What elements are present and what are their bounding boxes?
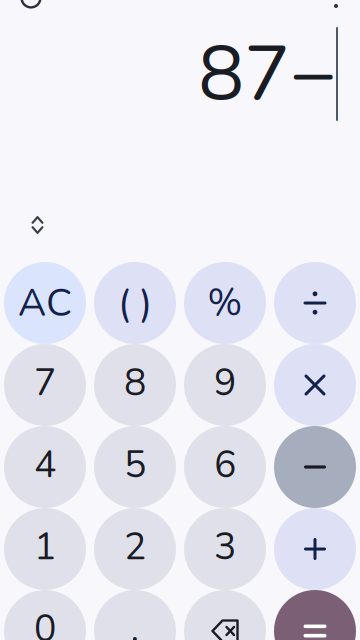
button[interactable]: Delete xyxy=(184,590,266,640)
button[interactable]: 3 xyxy=(184,508,266,590)
button[interactable]: Show history xyxy=(15,205,59,245)
staticText: 7 xyxy=(34,357,56,408)
button[interactable]: More options xyxy=(326,0,346,16)
button[interactable]: History xyxy=(14,0,48,15)
staticText: 3 xyxy=(214,521,236,572)
button[interactable]: 9 xyxy=(184,344,266,426)
button[interactable]: 1 xyxy=(4,508,86,590)
button[interactable]: 8 xyxy=(94,344,176,426)
button[interactable]: AC xyxy=(4,262,86,344)
button[interactable]: 6 xyxy=(184,426,266,508)
button[interactable]: 5 xyxy=(94,426,176,508)
button[interactable]: Divide xyxy=(274,262,356,344)
button[interactable]: ( ) xyxy=(94,262,176,344)
button[interactable]: Multiply xyxy=(274,344,356,426)
button[interactable]: 7 xyxy=(4,344,86,426)
staticText: % xyxy=(207,277,242,328)
button[interactable]: 0 xyxy=(4,590,86,640)
staticText: AC xyxy=(18,277,72,329)
button[interactable]: 4 xyxy=(4,426,86,508)
staticText: ( ) xyxy=(118,277,152,329)
staticText: 9 xyxy=(214,357,236,408)
staticText: 1 xyxy=(34,521,56,572)
button[interactable]: Subtract xyxy=(274,426,356,508)
staticText: 87− xyxy=(198,21,336,127)
staticText: 6 xyxy=(214,439,236,490)
button[interactable]: Add xyxy=(274,508,356,590)
staticText: 5 xyxy=(124,439,146,490)
button[interactable]: . xyxy=(94,590,176,640)
button[interactable]: 2 xyxy=(94,508,176,590)
staticText: 2 xyxy=(124,521,146,572)
button[interactable]: % xyxy=(184,262,266,344)
staticText: 8 xyxy=(124,357,146,408)
staticText: . xyxy=(130,603,139,640)
staticText: 0 xyxy=(34,603,56,640)
staticText: 4 xyxy=(34,439,56,490)
button[interactable]: Equals xyxy=(274,590,356,640)
